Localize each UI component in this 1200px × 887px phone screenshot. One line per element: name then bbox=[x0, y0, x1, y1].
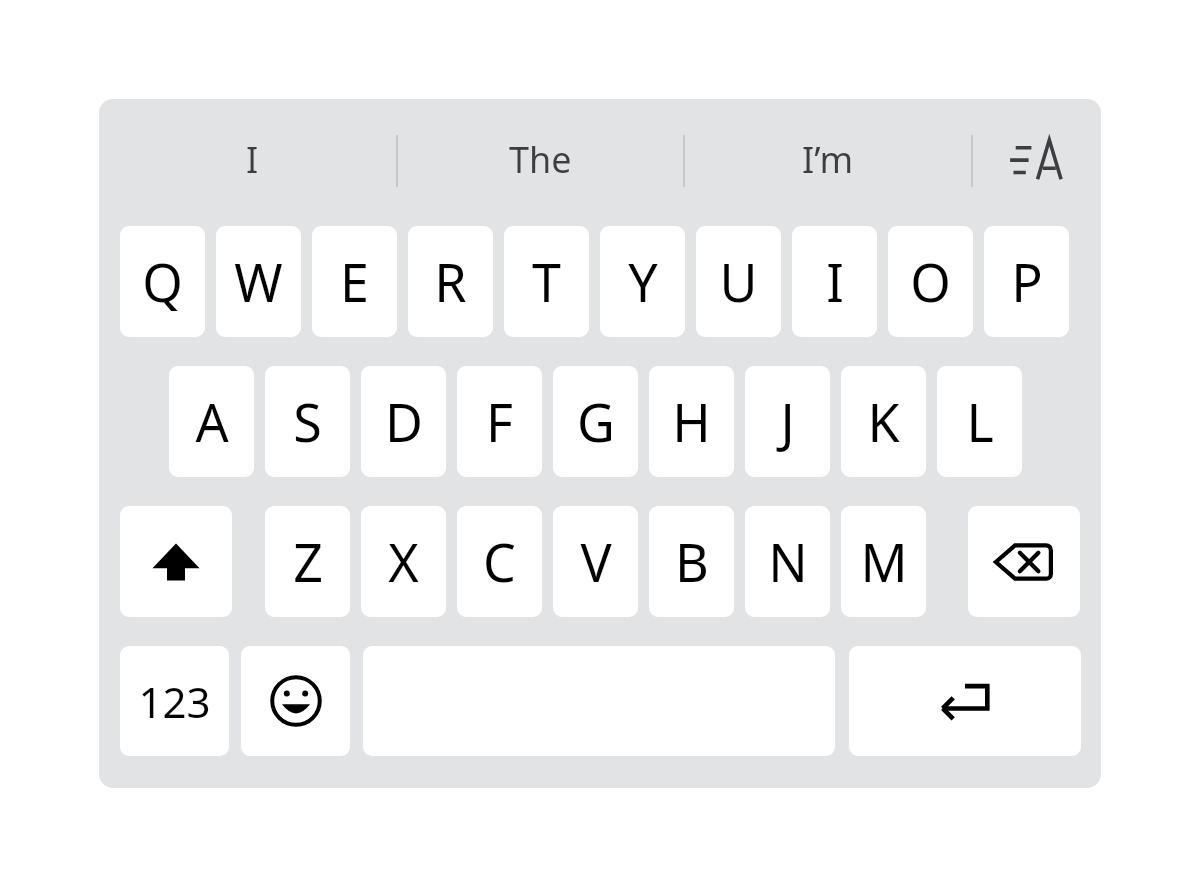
button[interactable]: P bbox=[984, 226, 1069, 337]
button[interactable]: S bbox=[265, 366, 350, 477]
staticText: B bbox=[675, 526, 709, 597]
staticText: J bbox=[780, 386, 795, 457]
button[interactable]: Shift bbox=[120, 506, 232, 617]
button[interactable]: Backspace bbox=[968, 506, 1080, 617]
button[interactable]: E bbox=[312, 226, 397, 337]
button[interactable]: Text editing options bbox=[973, 99, 1101, 219]
button[interactable]: W bbox=[216, 226, 301, 337]
staticText: Y bbox=[628, 246, 658, 317]
staticText: I bbox=[246, 135, 259, 184]
staticText: Z bbox=[293, 526, 323, 597]
staticText: X bbox=[388, 526, 419, 597]
button[interactable]: I bbox=[109, 99, 396, 219]
staticText: M bbox=[860, 526, 908, 597]
staticText: U bbox=[719, 246, 758, 317]
button[interactable]: A bbox=[169, 366, 254, 477]
staticText: I bbox=[826, 246, 844, 317]
button[interactable]: D bbox=[361, 366, 446, 477]
button[interactable]: U bbox=[696, 226, 781, 337]
staticText: O bbox=[910, 246, 951, 317]
button[interactable]: F bbox=[457, 366, 542, 477]
button[interactable]: J bbox=[745, 366, 830, 477]
staticText: Q bbox=[142, 246, 183, 317]
button[interactable]: I’m bbox=[685, 99, 970, 219]
button[interactable]: Z bbox=[265, 506, 350, 617]
button[interactable]: N bbox=[745, 506, 830, 617]
staticText: N bbox=[768, 526, 808, 597]
button[interactable]: X bbox=[361, 506, 446, 617]
staticText: The bbox=[509, 135, 572, 184]
button[interactable]: 123 bbox=[120, 646, 229, 756]
button[interactable]: R bbox=[408, 226, 493, 337]
button[interactable]: V bbox=[553, 506, 638, 617]
staticText: T bbox=[532, 246, 561, 317]
staticText: W bbox=[234, 246, 283, 317]
button[interactable]: C bbox=[457, 506, 542, 617]
button[interactable]: The bbox=[398, 99, 683, 219]
button[interactable]: I bbox=[792, 226, 877, 337]
button[interactable]: Enter bbox=[849, 646, 1081, 756]
staticText: L bbox=[966, 386, 994, 457]
staticText: H bbox=[672, 386, 711, 457]
button[interactable]: Q bbox=[120, 226, 205, 337]
staticText: R bbox=[434, 246, 467, 317]
staticText: P bbox=[1011, 246, 1043, 317]
staticText: 123 bbox=[138, 673, 211, 730]
staticText: I’m bbox=[802, 135, 854, 184]
button[interactable]: B bbox=[649, 506, 734, 617]
button[interactable]: G bbox=[553, 366, 638, 477]
button[interactable]: M bbox=[841, 506, 926, 617]
staticText: V bbox=[580, 526, 612, 597]
button[interactable]: Y bbox=[600, 226, 685, 337]
button[interactable]: L bbox=[937, 366, 1022, 477]
staticText: K bbox=[867, 386, 900, 457]
button[interactable]: T bbox=[504, 226, 589, 337]
button[interactable]: H bbox=[649, 366, 734, 477]
button[interactable]: K bbox=[841, 366, 926, 477]
button[interactable]: Emoji bbox=[241, 646, 350, 756]
staticText: D bbox=[385, 386, 423, 457]
staticText: S bbox=[293, 386, 322, 457]
staticText: F bbox=[486, 386, 513, 457]
staticText: A bbox=[195, 386, 229, 457]
staticText: G bbox=[577, 386, 615, 457]
staticText: C bbox=[483, 526, 516, 597]
staticText: E bbox=[340, 246, 369, 317]
button[interactable]: O bbox=[888, 226, 973, 337]
